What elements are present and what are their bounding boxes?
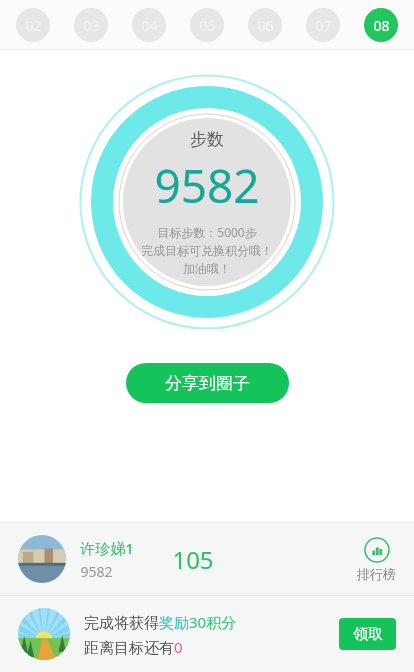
staticText: 03 bbox=[83, 16, 100, 35]
button[interactable]: 04 bbox=[132, 8, 166, 42]
staticText: 步数 bbox=[190, 129, 224, 150]
button[interactable]: 07 bbox=[306, 8, 340, 42]
button[interactable]: 领取 bbox=[339, 618, 396, 650]
staticText: 完成将获得奖励30积分 bbox=[84, 612, 237, 632]
button[interactable]: 02 bbox=[16, 8, 50, 42]
staticText: 距离目标还有0 bbox=[84, 637, 183, 657]
staticText: 05 bbox=[199, 16, 216, 35]
button[interactable]: 08 bbox=[364, 8, 398, 42]
button[interactable]: 许珍娣1 bbox=[0, 523, 414, 595]
staticText: 目标步数：5000步 bbox=[157, 224, 257, 240]
staticText: 9582 bbox=[80, 562, 113, 581]
staticText: 完成目标可兑换积分哦！ bbox=[141, 243, 273, 258]
button[interactable]: 完成将获得奖励30积分 bbox=[0, 596, 414, 672]
staticText: 04 bbox=[141, 16, 158, 35]
button[interactable]: 排行榜 bbox=[357, 537, 396, 582]
staticText: 排行榜 bbox=[357, 566, 396, 582]
staticText: 分享到圈子 bbox=[165, 373, 250, 394]
staticText: 加油哦！ bbox=[183, 261, 231, 276]
staticText: 领取 bbox=[353, 625, 383, 644]
staticText: 08 bbox=[373, 16, 390, 35]
staticText: 9582 bbox=[154, 154, 260, 217]
staticText: 许珍娣1 bbox=[80, 538, 134, 558]
button[interactable]: 分享到圈子 bbox=[126, 363, 289, 403]
staticText: 06 bbox=[257, 16, 274, 35]
staticText: 105 bbox=[172, 543, 214, 576]
staticText: 07 bbox=[315, 16, 332, 35]
button[interactable]: 05 bbox=[190, 8, 224, 42]
staticText: 02 bbox=[25, 16, 42, 35]
button[interactable]: 06 bbox=[248, 8, 282, 42]
button[interactable]: 03 bbox=[74, 8, 108, 42]
